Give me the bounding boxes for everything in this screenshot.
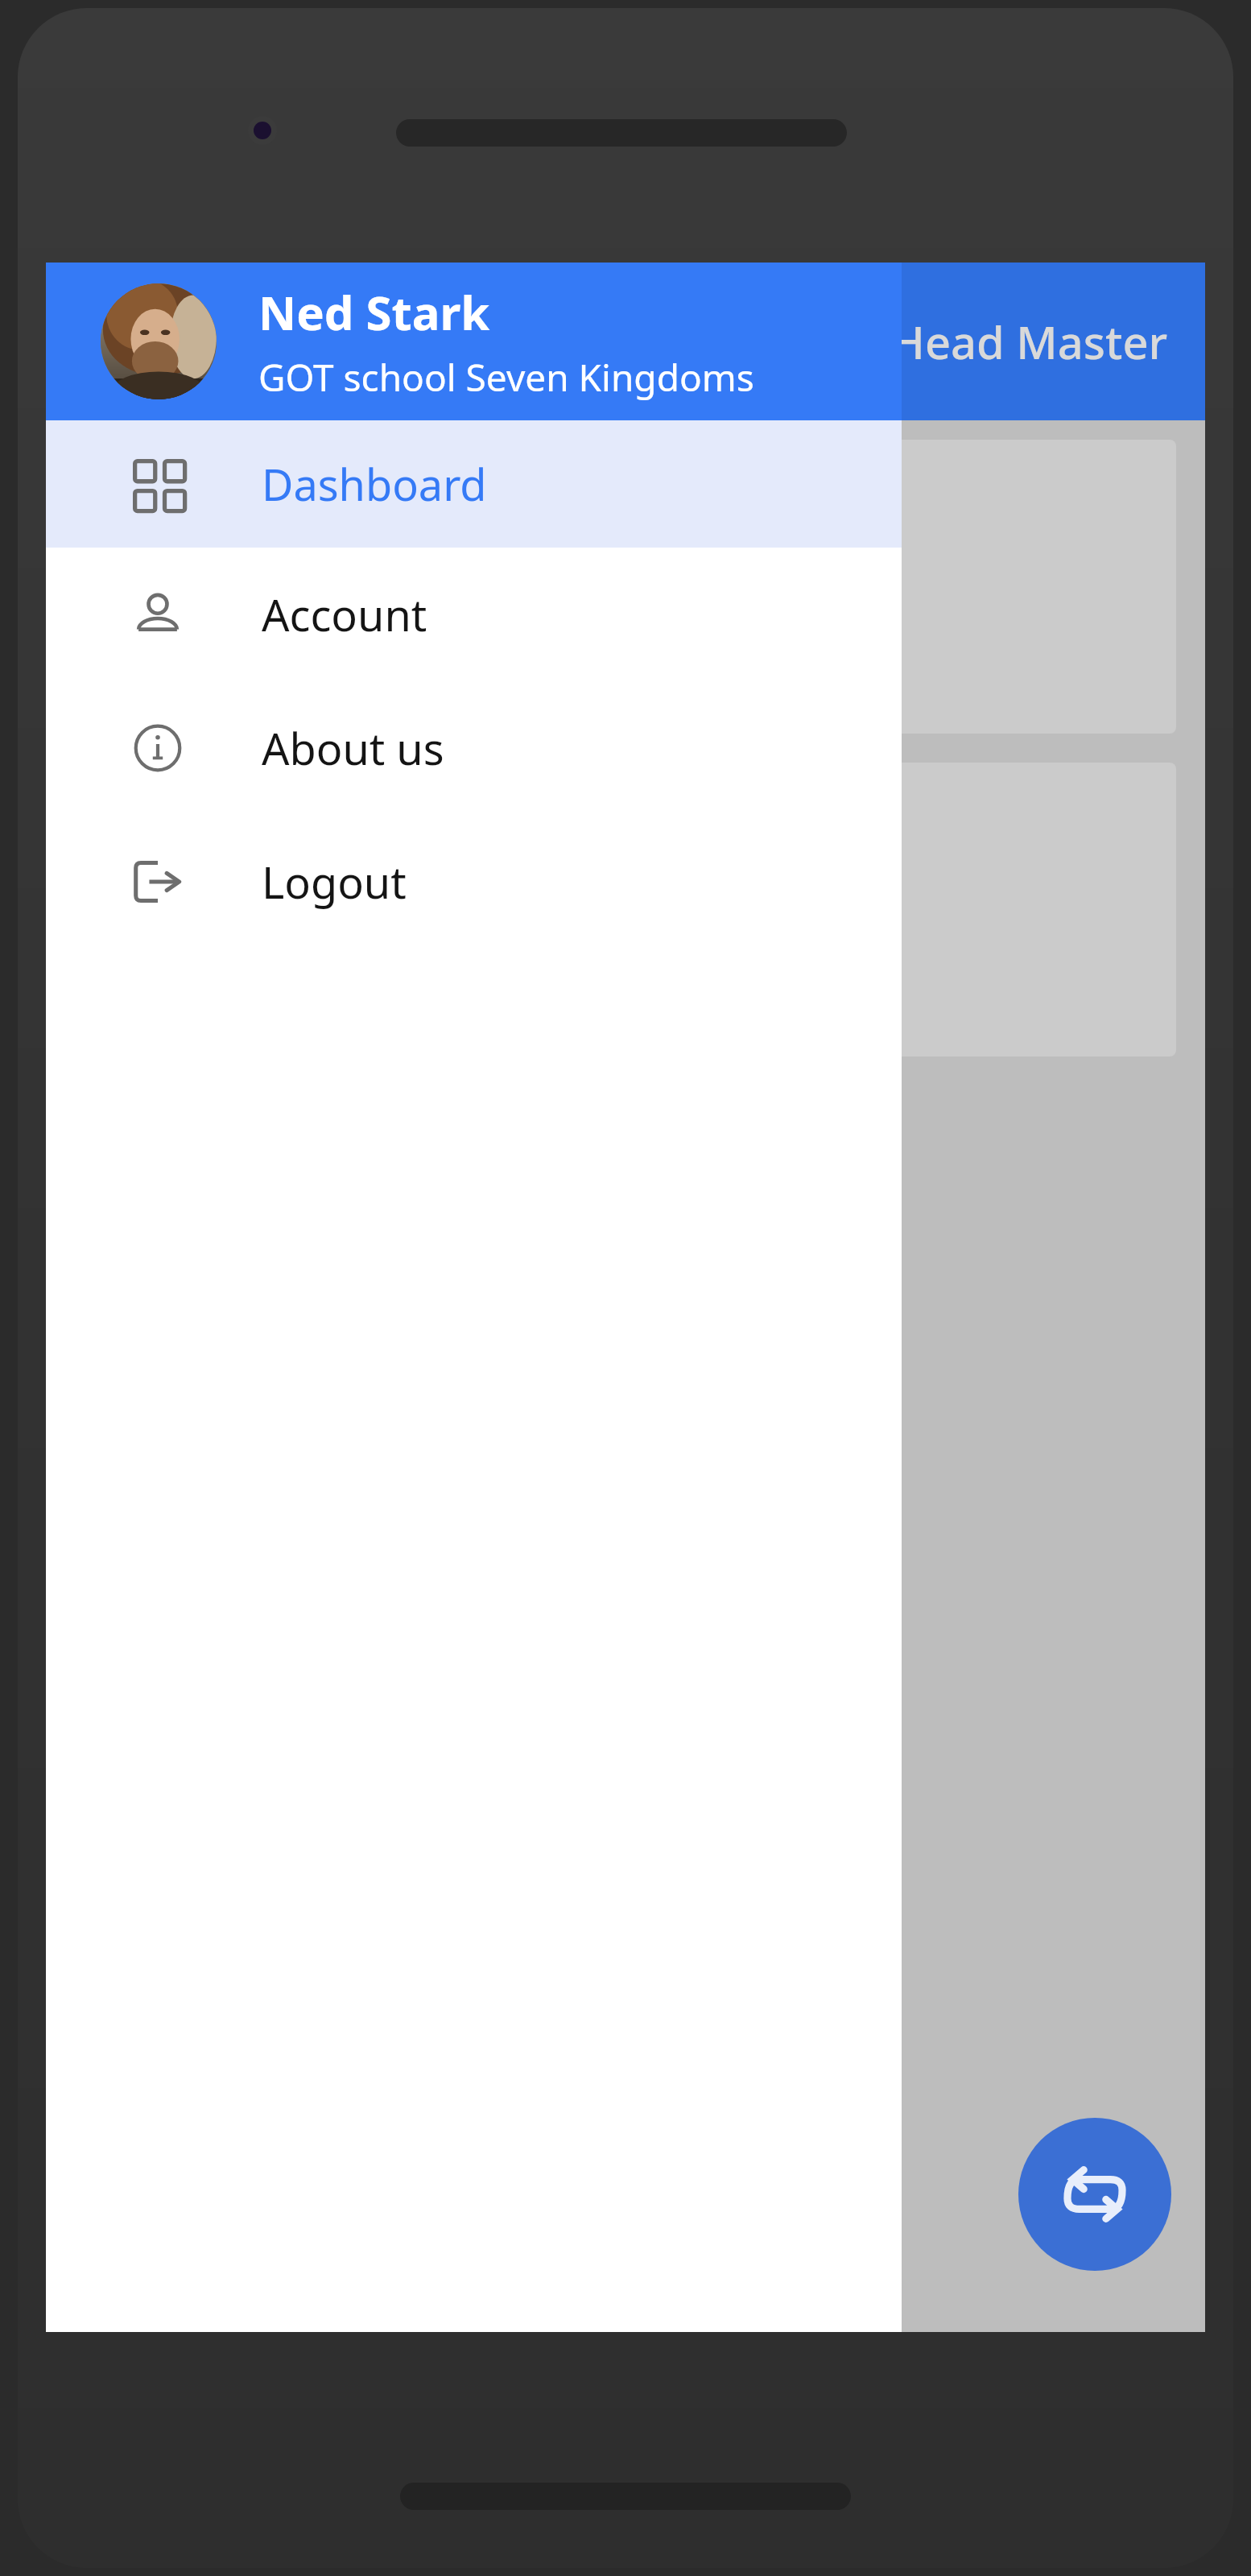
button[interactable]: Account — [46, 548, 902, 681]
button[interactable]: Switch — [1018, 2118, 1171, 2271]
staticText: About us — [262, 718, 444, 778]
button[interactable]: Ned Stark — [46, 263, 902, 420]
staticText: Ned Stark — [258, 280, 490, 344]
button[interactable]: Logout — [46, 815, 902, 949]
button[interactable]: About us — [46, 681, 902, 815]
button[interactable] — [75, 763, 1176, 1056]
staticText: GOT school Seven Kingdoms — [258, 352, 754, 403]
button[interactable] — [75, 440, 1176, 734]
staticText: Head Master — [891, 311, 1168, 372]
staticText: Dashboard — [262, 454, 487, 514]
staticText: Account — [262, 585, 427, 644]
staticText: Logout — [262, 852, 407, 912]
button[interactable]: Dashboard — [46, 420, 902, 548]
